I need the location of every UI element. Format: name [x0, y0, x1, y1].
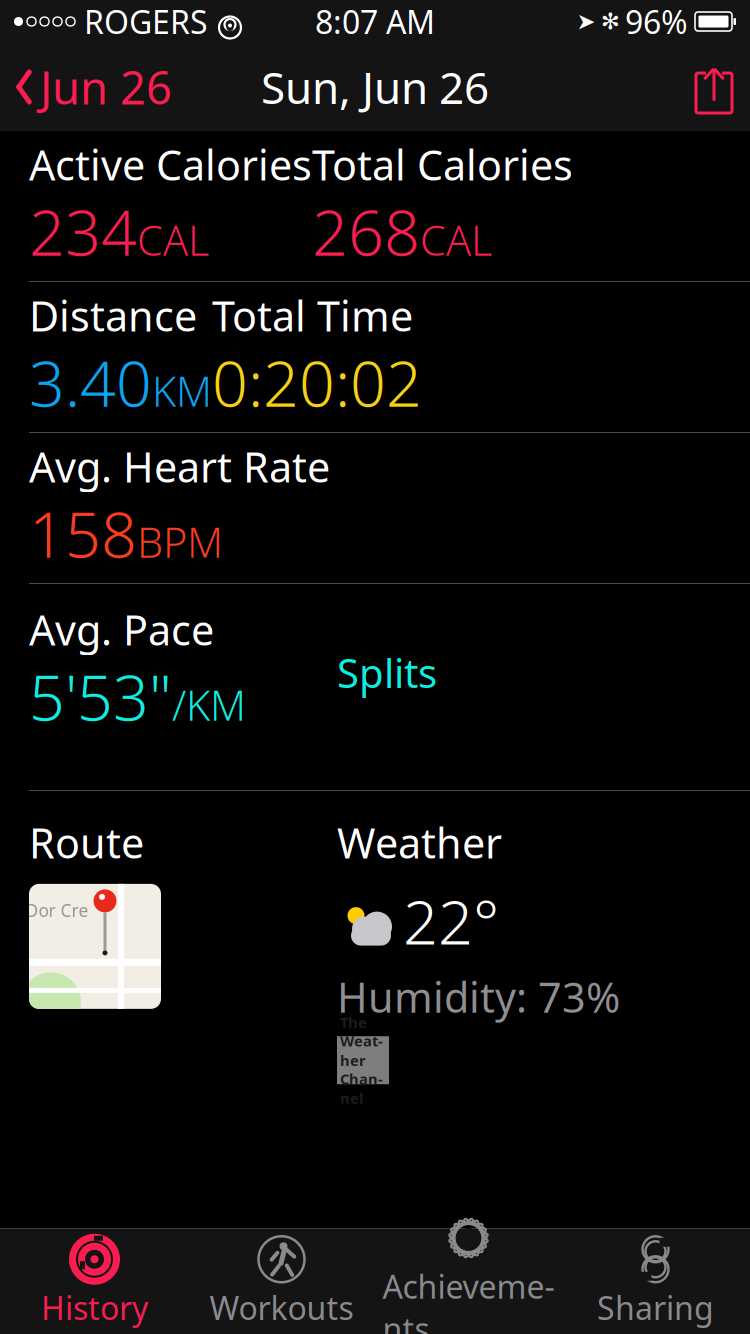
- staticText: The: [340, 1012, 367, 1032]
- staticText: 3.40: [29, 341, 152, 424]
- staticText: Achievements: [382, 1265, 554, 1334]
- button[interactable]: Workouts: [188, 1229, 375, 1334]
- staticText: Jun 26: [40, 57, 172, 117]
- button[interactable]: Route map: [29, 884, 161, 1009]
- staticText: 234: [29, 190, 137, 273]
- staticText: BPM: [137, 514, 223, 569]
- staticText: 0:20:02: [212, 341, 422, 424]
- staticText: CAL: [137, 212, 209, 267]
- staticText: Weather: [340, 1031, 383, 1070]
- button[interactable]: History: [1, 1229, 188, 1334]
- button[interactable]: Sharing: [562, 1229, 749, 1334]
- staticText: KM: [152, 363, 212, 418]
- staticText: History: [41, 1286, 148, 1329]
- button[interactable]: Achievements: [375, 1229, 562, 1334]
- staticText: 22°: [403, 880, 499, 961]
- staticText: Avg. Heart Rate: [29, 439, 330, 494]
- staticText: Total Time: [212, 288, 413, 343]
- button[interactable]: Splits: [337, 602, 461, 707]
- staticText: Sun, Jun 26: [261, 58, 489, 116]
- staticText: Active Calories: [29, 137, 312, 192]
- staticText: 96%: [625, 0, 688, 43]
- staticText: ➤: [576, 9, 595, 34]
- staticText: Route: [29, 815, 144, 870]
- staticText: Humidity: 73%: [337, 969, 620, 1024]
- staticText: Channel: [340, 1069, 383, 1108]
- staticText: ✻: [601, 9, 620, 34]
- button[interactable]: Share: [692, 57, 750, 117]
- button[interactable]: Jun 26: [0, 49, 172, 125]
- staticText: 5'53": [29, 655, 172, 738]
- staticText: CAL: [420, 212, 492, 267]
- staticText: Dor Cre: [25, 899, 88, 922]
- staticText: 268: [312, 190, 420, 273]
- staticText: 8:07 AM: [315, 0, 435, 43]
- staticText: Weather: [337, 815, 502, 870]
- staticText: Sharing: [597, 1286, 714, 1329]
- staticText: 158: [29, 492, 137, 575]
- staticText: Avg. Pace: [29, 602, 214, 657]
- staticText: ROGERS: [84, 0, 208, 43]
- staticText: Splits: [337, 646, 437, 699]
- staticText: Total Calories: [312, 137, 573, 192]
- staticText: Distance: [29, 288, 197, 343]
- staticText: /KM: [172, 677, 246, 732]
- staticText: Workouts: [209, 1286, 353, 1329]
